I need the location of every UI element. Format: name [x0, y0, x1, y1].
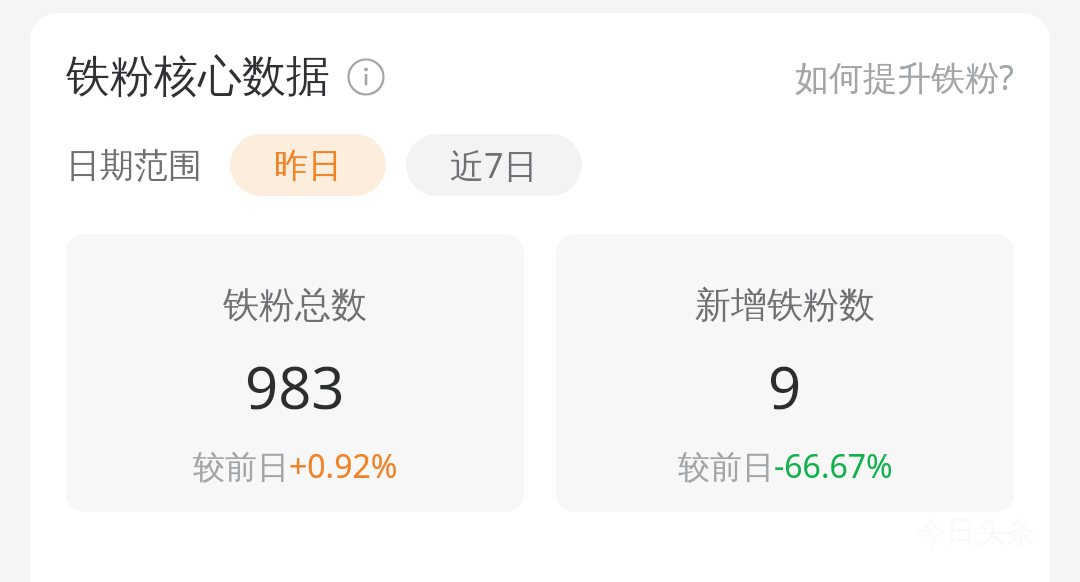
button[interactable]: 铁粉总数: [66, 234, 524, 512]
button[interactable]: 新增铁粉数: [556, 234, 1014, 512]
button[interactable]: 说明: [346, 57, 386, 97]
staticText: 新增铁粉数: [695, 282, 875, 327]
staticText: 如何提升铁粉?: [795, 54, 1014, 100]
button[interactable]: 近7日: [406, 134, 582, 196]
staticText: 9: [768, 347, 802, 426]
staticText: 983: [245, 347, 345, 426]
button[interactable]: 昨日: [230, 134, 386, 196]
staticText: 较前日+0.92%: [193, 444, 398, 488]
staticText: 铁粉核心数据: [66, 49, 330, 104]
staticText: 近7日: [450, 142, 538, 188]
staticText: 铁粉总数: [223, 282, 367, 327]
staticText: 较前日-66.67%: [678, 444, 893, 488]
staticText: 昨日: [274, 144, 342, 187]
button[interactable]: 如何提升铁粉?: [795, 54, 1014, 100]
staticText: 日期范围: [66, 144, 202, 187]
